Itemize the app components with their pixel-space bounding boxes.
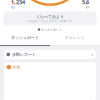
staticText: 歩数 [12,65,20,70]
staticText: もっとくわしく [41,28,62,31]
button[interactable]: チャレンジ [50,35,100,46]
staticText: 1,234 [11,0,25,6]
staticText: ダッシュボード [11,35,39,40]
button[interactable]: 歩数レポート [4,50,96,59]
staticText: 5.6 [82,0,89,6]
button[interactable]: もっとくわしく [38,27,62,32]
staticText: チャレンジ [65,35,85,40]
staticText: くらべてみよう [36,14,64,19]
staticText: 歩数レポート [12,52,36,57]
staticText: km [86,6,89,9]
staticText: kcal [11,6,15,9]
staticText: › [91,51,93,58]
staticText: 今日はいつもより少ない歩数です [27,19,72,23]
button[interactable]: ダッシュボード [0,35,50,46]
